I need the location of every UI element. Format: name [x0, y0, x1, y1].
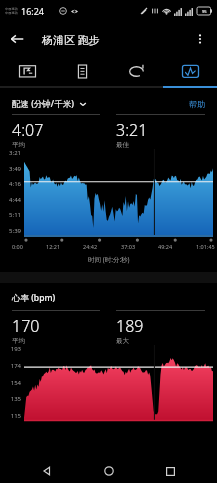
button[interactable]: Details: [55, 56, 109, 86]
staticText: 3:21: [9, 149, 21, 157]
button[interactable]: Map: [0, 56, 55, 86]
button[interactable]: Recents: [155, 459, 185, 483]
button[interactable]: Home: [94, 459, 124, 483]
staticText: 心率 (bpm): [12, 292, 56, 304]
staticText: 0:00: [12, 243, 23, 250]
button[interactable]: 配速 (分钟/千米): [12, 98, 87, 110]
staticText: 帮助: [189, 99, 205, 109]
staticText: 配速 (分钟/千米): [12, 98, 74, 110]
staticText: 154: [10, 379, 21, 387]
staticText: 杨浦区 跑步: [42, 32, 100, 47]
staticText: 189: [116, 315, 144, 337]
staticText: 24:42: [83, 243, 98, 250]
staticText: 49:24: [158, 243, 173, 250]
staticText: 3:21: [116, 119, 148, 141]
staticText: 5:11: [9, 211, 21, 219]
staticText: 时间 (时:分:秒): [88, 255, 130, 264]
button[interactable]: 帮助: [189, 99, 205, 109]
staticText: 最大: [116, 337, 129, 345]
staticText: 16:24: [21, 5, 45, 17]
staticText: 193: [10, 345, 21, 353]
button[interactable]: Back: [32, 459, 62, 483]
button[interactable]: More options: [183, 22, 217, 56]
button[interactable]: Laps: [109, 56, 163, 86]
staticText: 115: [10, 412, 21, 420]
button[interactable]: Charts: [163, 56, 217, 86]
staticText: 5:39: [9, 227, 21, 235]
staticText: 1:01:45: [196, 243, 215, 250]
staticText: 135: [10, 395, 21, 403]
staticText: 12:21: [46, 243, 61, 250]
staticText: 170: [12, 315, 40, 337]
staticText: 平均: [12, 337, 25, 345]
staticText: 95: [202, 9, 207, 14]
staticText: 174: [10, 362, 21, 370]
staticText: 中国移动: [5, 11, 18, 15]
staticText: 中国移动: [5, 7, 18, 11]
staticText: 3:49: [9, 165, 21, 173]
staticText: 4:07: [12, 119, 44, 141]
staticText: 4:16: [9, 180, 21, 188]
staticText: 37:03: [121, 243, 136, 250]
button[interactable]: Back: [0, 22, 34, 56]
staticText: 最佳: [116, 141, 129, 149]
staticText: 4:44: [9, 196, 21, 204]
staticText: 平均: [12, 141, 25, 149]
